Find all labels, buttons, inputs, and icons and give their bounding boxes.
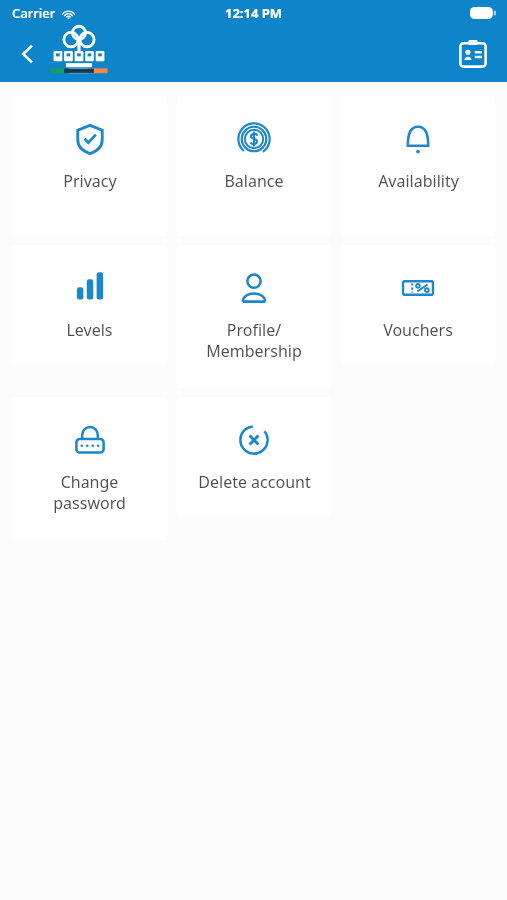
button[interactable]: Change password [12, 397, 167, 540]
button[interactable]: Padel Tennis Ireland [48, 30, 110, 78]
staticText: Availability [378, 170, 459, 192]
staticText: Privacy [63, 170, 117, 192]
staticText: Change password [53, 471, 126, 514]
button[interactable]: Privacy [12, 96, 167, 236]
staticText: Vouchers [383, 319, 453, 341]
button[interactable]: Balance [177, 96, 331, 236]
button[interactable]: Vouchers [341, 245, 495, 365]
staticText: 12:14 PM [225, 4, 283, 22]
button[interactable]: Profile / Membership [177, 245, 331, 388]
button[interactable]: Availability [341, 96, 495, 236]
staticText: Balance [224, 170, 284, 192]
staticText: Delete account [198, 471, 311, 493]
button[interactable]: Membership card [451, 32, 495, 76]
staticText: Carrier [12, 4, 56, 22]
staticText: Profile/ Membership [206, 319, 302, 362]
button[interactable]: Delete account [177, 397, 331, 517]
staticText: Levels [66, 319, 113, 341]
button[interactable]: Back [8, 34, 48, 74]
button[interactable]: Levels [12, 245, 167, 365]
